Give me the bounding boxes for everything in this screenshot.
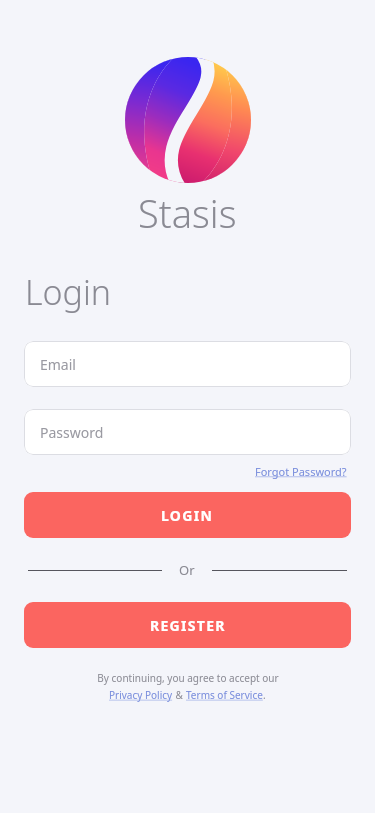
button[interactable]: Privacy Policy xyxy=(109,688,173,702)
staticText: & xyxy=(173,688,186,702)
button[interactable]: LOGIN xyxy=(24,492,351,538)
staticText: REGISTER xyxy=(150,616,226,635)
button[interactable]: REGISTER xyxy=(24,602,351,648)
staticText: LOGIN xyxy=(161,506,214,525)
button[interactable]: Password xyxy=(24,409,351,455)
other: Stasis logo xyxy=(125,57,251,183)
staticText: Email xyxy=(40,355,76,374)
button[interactable]: Terms of Service xyxy=(186,688,263,702)
staticText: . xyxy=(263,688,266,702)
staticText: By continuing, you agree to accept our xyxy=(97,671,279,685)
staticText: Privacy Policy xyxy=(109,688,173,702)
staticText: Or xyxy=(179,561,195,579)
button[interactable]: Forgot Password? xyxy=(253,462,349,481)
button[interactable]: Email xyxy=(24,341,351,387)
staticText: Password xyxy=(40,423,104,442)
staticText: Terms of Service xyxy=(186,688,263,702)
staticText: Stasis xyxy=(138,187,237,239)
staticText: Forgot Password? xyxy=(255,464,347,479)
staticText: Login xyxy=(25,269,112,315)
